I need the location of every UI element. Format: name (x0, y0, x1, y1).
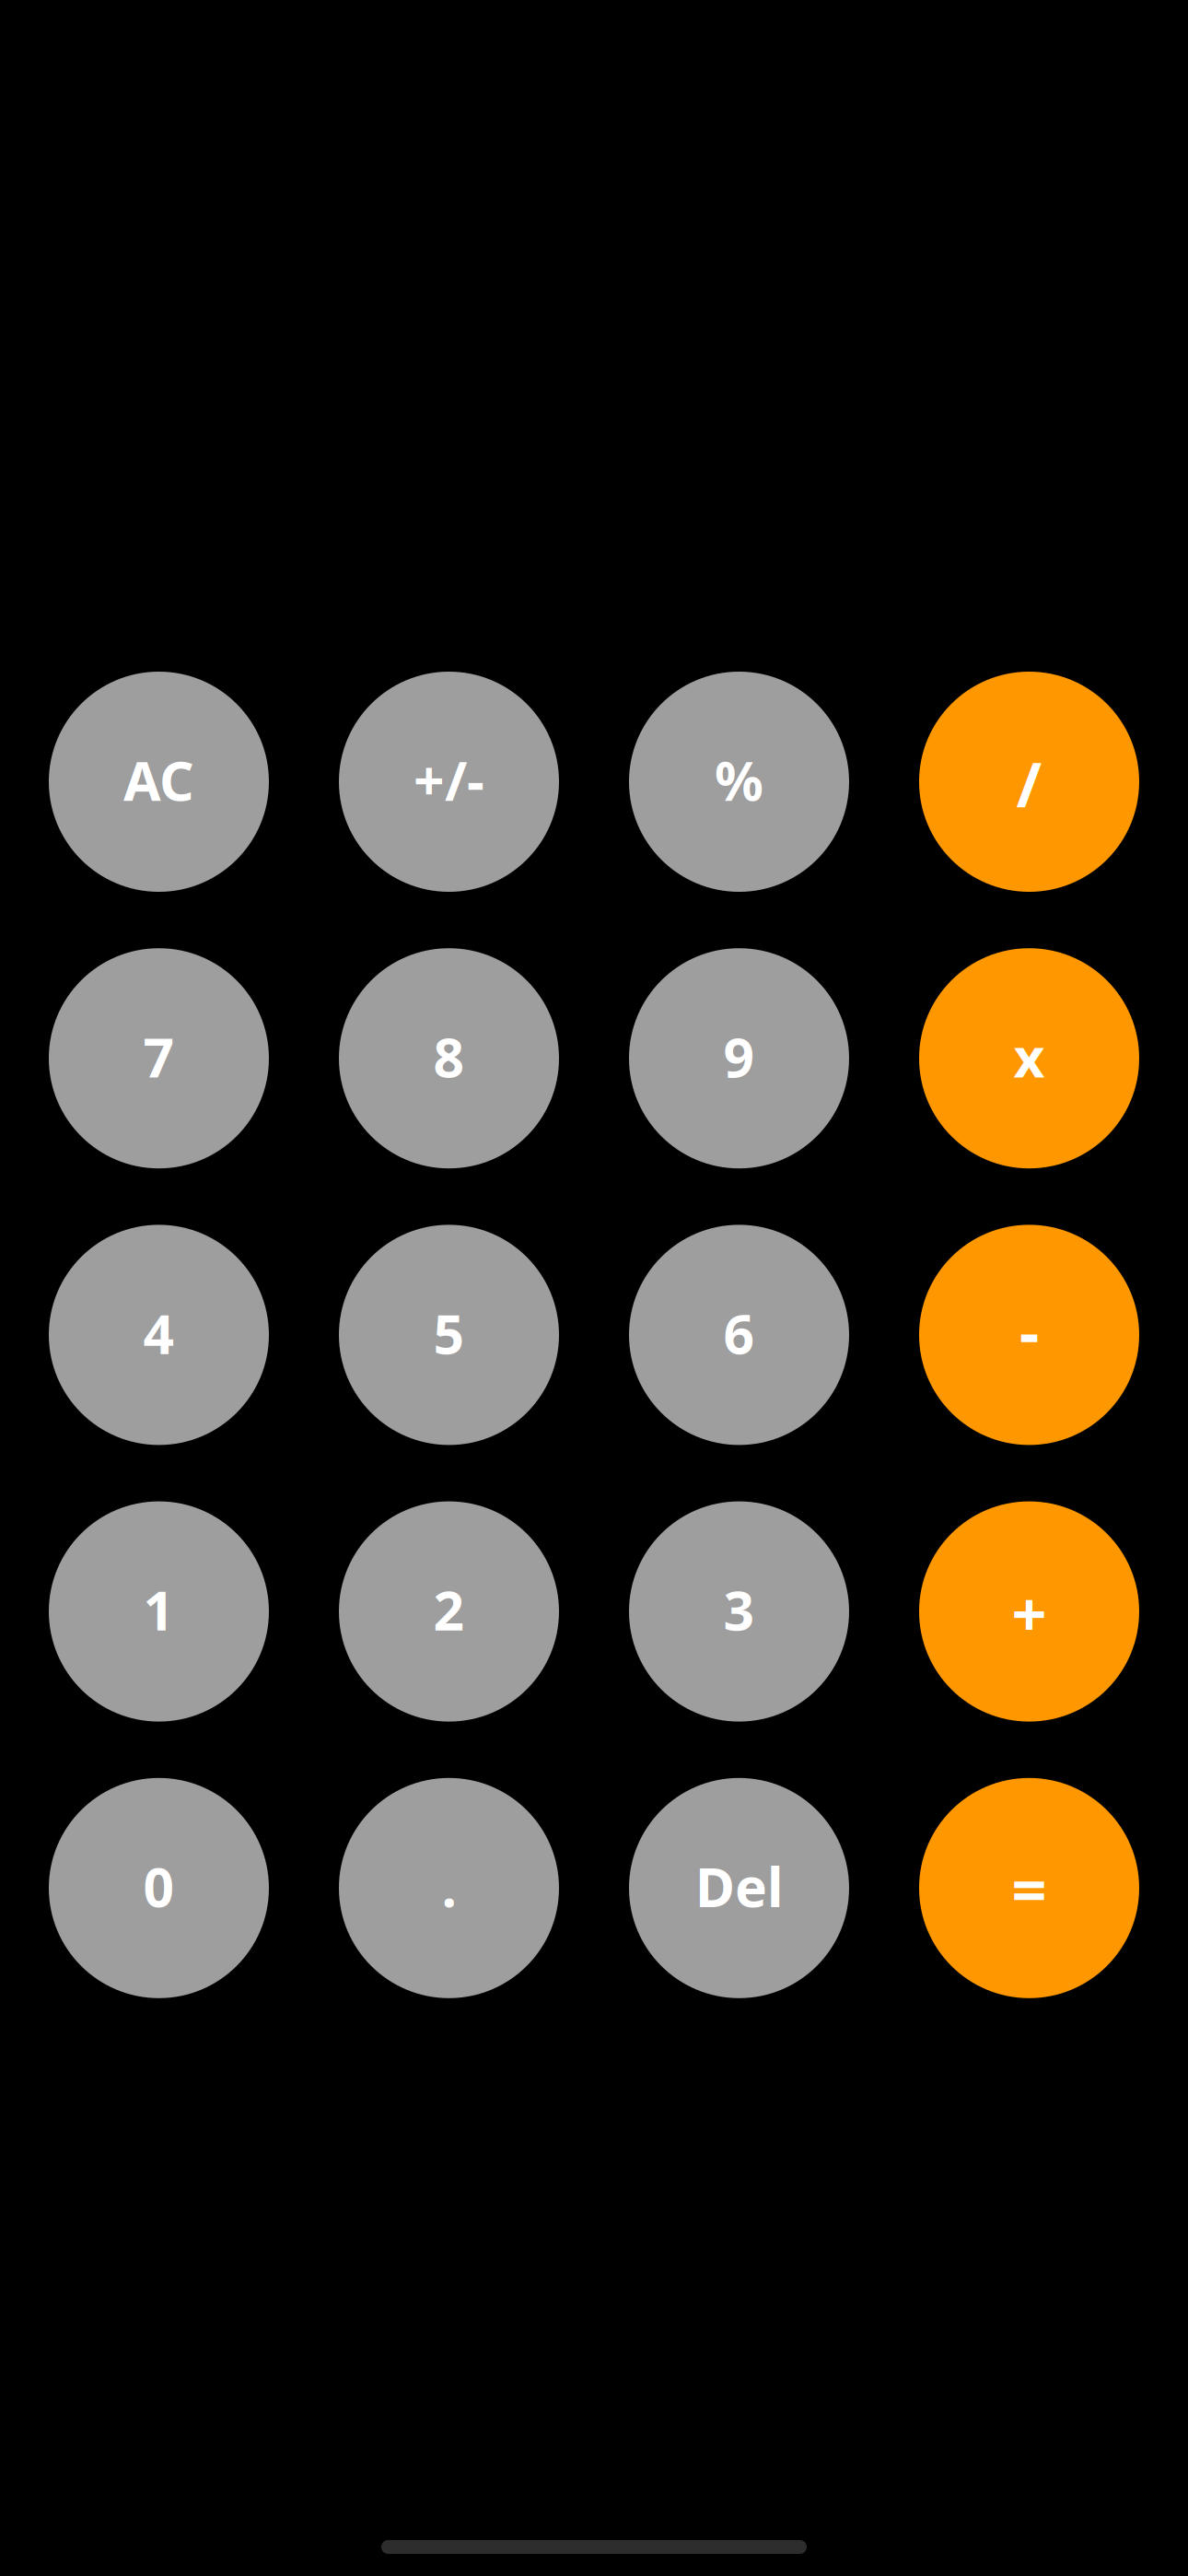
button[interactable]: 2 (339, 1501, 559, 1722)
staticText: Del (695, 1850, 783, 1922)
button[interactable]: 0 (49, 1778, 269, 1998)
staticText: + (1012, 1572, 1047, 1653)
button[interactable]: 7 (49, 948, 269, 1168)
button[interactable]: AC (49, 672, 269, 892)
staticText: +/- (413, 744, 484, 816)
staticText: 1 (143, 1574, 175, 1645)
button[interactable]: 6 (629, 1225, 849, 1445)
button[interactable]: 1 (49, 1501, 269, 1722)
button[interactable]: - (919, 1225, 1139, 1445)
staticText: 8 (433, 1021, 465, 1092)
button[interactable]: % (629, 672, 849, 892)
staticText: AC (123, 744, 194, 816)
staticText: 0 (143, 1850, 175, 1922)
button[interactable]: . (339, 1778, 559, 1998)
staticText: 7 (143, 1021, 175, 1092)
staticText: % (715, 744, 763, 816)
staticText: 2 (433, 1574, 465, 1645)
staticText: / (1016, 743, 1042, 824)
button[interactable]: Del (629, 1778, 849, 1998)
staticText: 5 (433, 1297, 465, 1369)
staticText: . (442, 1850, 456, 1922)
button[interactable]: 3 (629, 1501, 849, 1722)
staticText: = (1012, 1848, 1047, 1930)
button[interactable]: / (919, 672, 1139, 892)
staticText: 4 (143, 1297, 175, 1369)
button[interactable]: = (919, 1778, 1139, 1998)
button[interactable]: 8 (339, 948, 559, 1168)
button[interactable]: + (919, 1501, 1139, 1722)
button[interactable]: +/- (339, 672, 559, 892)
staticText: - (1019, 1290, 1039, 1372)
staticText: 9 (723, 1021, 755, 1092)
button[interactable]: 5 (339, 1225, 559, 1445)
staticText: x (1013, 1021, 1045, 1092)
button[interactable]: 9 (629, 948, 849, 1168)
button[interactable]: x (919, 948, 1139, 1168)
staticText: 6 (723, 1297, 755, 1369)
button[interactable]: 4 (49, 1225, 269, 1445)
staticText: 3 (723, 1574, 755, 1645)
